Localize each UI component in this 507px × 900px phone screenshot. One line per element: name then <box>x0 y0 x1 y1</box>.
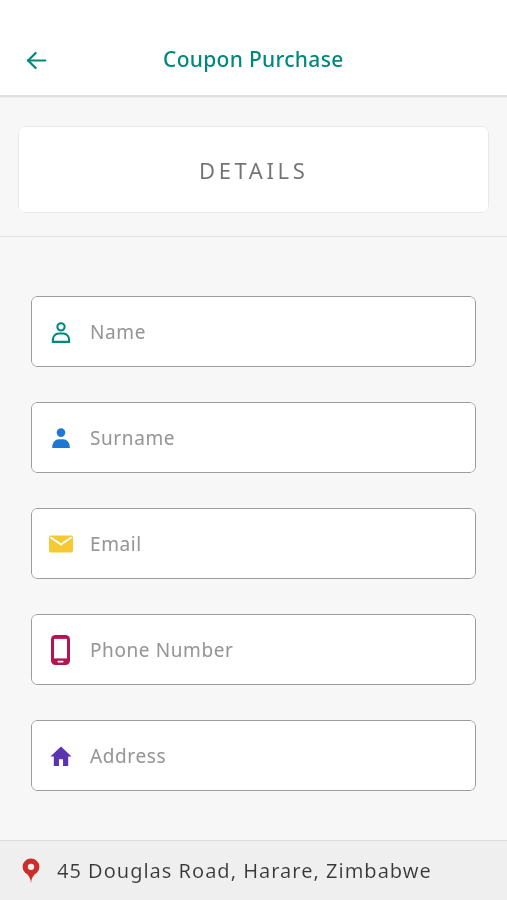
staticText: DETAILS <box>199 155 309 185</box>
button[interactable]: Coupon Purchase <box>163 45 344 74</box>
button[interactable] <box>14 38 58 82</box>
button[interactable]: Surname <box>31 402 476 473</box>
button[interactable]: 45 Douglas Road, Harare, Zimbabwe <box>0 841 507 900</box>
button[interactable]: Name <box>31 296 476 367</box>
button[interactable]: Email <box>31 508 476 579</box>
staticText: Address <box>90 743 167 769</box>
button[interactable]: Phone Number <box>31 614 476 685</box>
staticText: 45 Douglas Road, Harare, Zimbabwe <box>57 857 432 884</box>
staticText: Phone Number <box>90 637 234 663</box>
staticText: Surname <box>90 425 176 451</box>
staticText: Name <box>90 319 146 345</box>
staticText: Email <box>90 531 142 557</box>
button[interactable]: Address <box>31 720 476 791</box>
button[interactable]: DETAILS <box>18 126 489 213</box>
